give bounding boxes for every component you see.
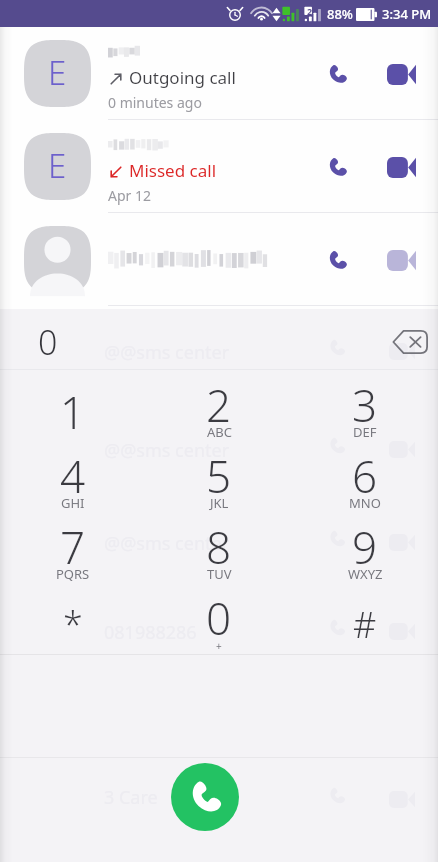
- staticText: @@sms center: [104, 438, 230, 463]
- button[interactable]: E: [0, 27, 438, 120]
- staticText: 2: [206, 375, 232, 435]
- staticText: 4: [60, 446, 86, 506]
- button[interactable]: Voice call: [309, 139, 365, 195]
- staticText: 3:34 PM: [382, 5, 432, 23]
- button[interactable]: E: [0, 120, 438, 213]
- staticText: 5: [206, 446, 232, 506]
- button[interactable]: 0: [146, 583, 292, 654]
- staticText: 88%: [327, 5, 353, 23]
- button[interactable]: Backspace: [382, 315, 436, 369]
- button[interactable]: 1: [0, 370, 146, 441]
- staticText: Missed call: [129, 159, 217, 182]
- button[interactable]: 6: [292, 441, 438, 512]
- staticText: Outgoing call: [129, 66, 236, 89]
- button[interactable]: #: [292, 583, 438, 654]
- staticText: 1: [60, 382, 86, 442]
- staticText: *: [63, 600, 83, 649]
- button[interactable]: Voice call: [309, 46, 365, 102]
- staticText: TUV: [207, 565, 232, 583]
- button[interactable]: 2: [146, 370, 292, 441]
- button[interactable]: 9: [292, 512, 438, 583]
- button[interactable]: Voice call: [309, 232, 365, 288]
- staticText: ABC: [207, 423, 232, 441]
- button[interactable]: 4: [0, 441, 146, 512]
- staticText: #: [353, 600, 377, 649]
- button[interactable]: Video call: [373, 46, 429, 102]
- button[interactable]: Video call: [373, 139, 429, 195]
- staticText: 2: [307, 5, 313, 17]
- button[interactable]: 7: [0, 512, 146, 583]
- button[interactable]: 5: [146, 441, 292, 512]
- staticText: 1: [285, 5, 291, 17]
- staticText: JKL: [210, 494, 229, 512]
- staticText: DEF: [353, 423, 377, 441]
- staticText: WXYZ: [348, 565, 383, 583]
- staticText: 0: [38, 319, 58, 365]
- button[interactable]: 8: [146, 512, 292, 583]
- staticText: 3: [352, 375, 378, 435]
- staticText: Apr 12: [108, 186, 151, 205]
- button[interactable]: Video call: [373, 232, 429, 288]
- staticText: 8: [206, 517, 232, 577]
- staticText: E: [48, 143, 67, 188]
- staticText: 0 minutes ago: [108, 93, 202, 112]
- staticText: MNO: [349, 494, 381, 512]
- button[interactable]: Voice call: [0, 213, 438, 306]
- staticText: +: [216, 639, 222, 653]
- button[interactable]: Call: [171, 763, 239, 831]
- staticText: GHI: [61, 494, 85, 512]
- button[interactable]: 3: [292, 370, 438, 441]
- staticText: 9: [352, 517, 378, 577]
- button[interactable]: *: [0, 583, 146, 654]
- staticText: 7: [60, 517, 86, 577]
- staticText: 0: [206, 588, 232, 648]
- staticText: PQRS: [56, 565, 90, 583]
- staticText: E: [48, 50, 67, 95]
- staticText: @@sms center: [104, 531, 230, 556]
- staticText: 6: [352, 446, 378, 506]
